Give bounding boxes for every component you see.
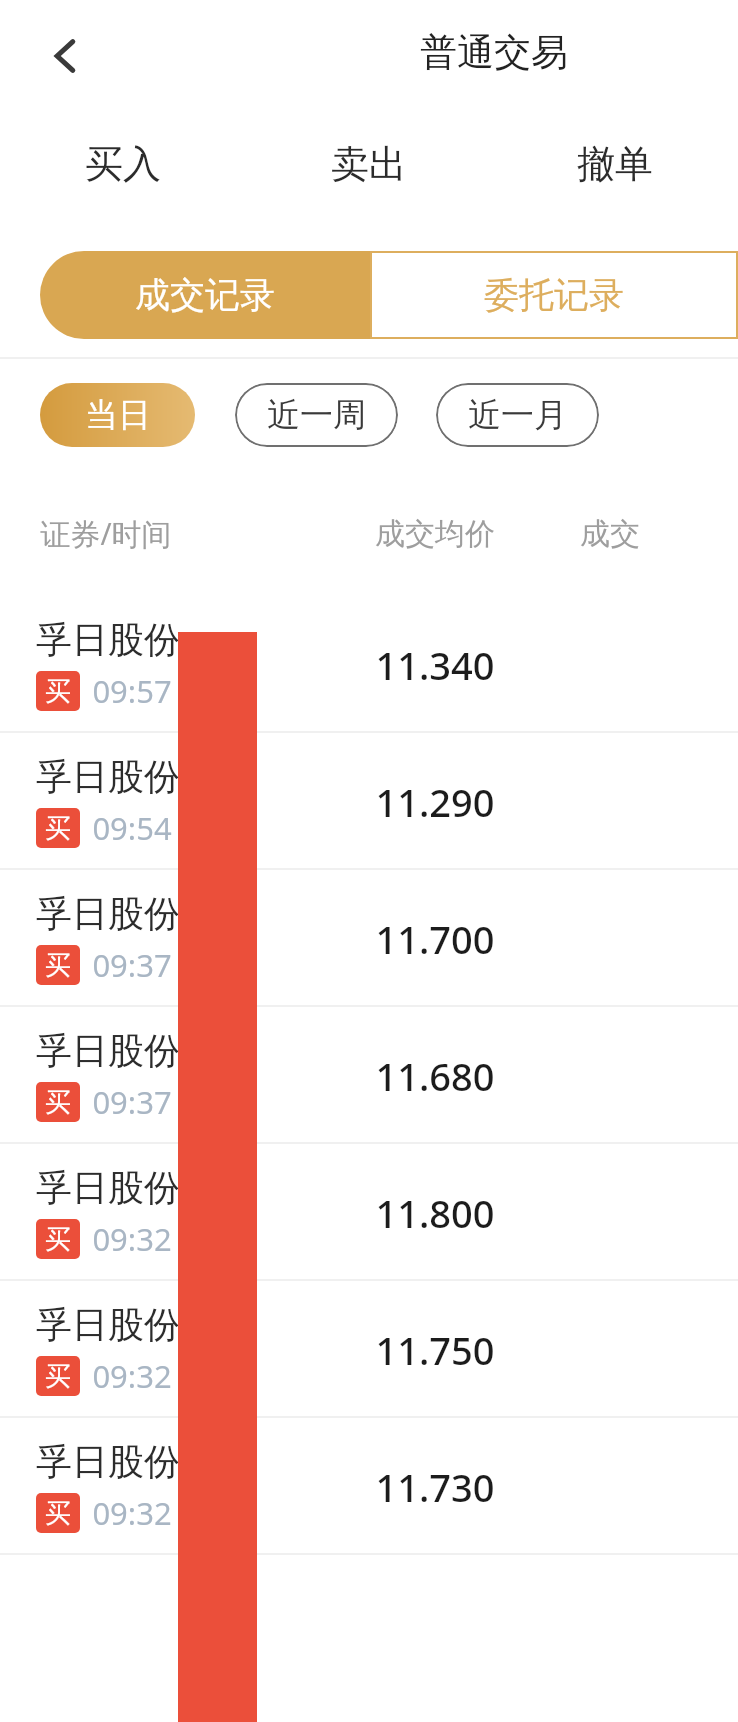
- staticText: 11.290: [375, 776, 495, 828]
- button[interactable]: 孚日股份: [0, 733, 738, 870]
- button[interactable]: 当日: [40, 383, 195, 447]
- button[interactable]: 买入: [0, 112, 246, 216]
- staticText: 11.800: [375, 1187, 495, 1239]
- staticText: 09:54: [92, 807, 172, 849]
- button[interactable]: 孚日股份: [0, 870, 738, 1007]
- staticText: 09:57: [92, 670, 172, 712]
- staticText: 11.730: [375, 1461, 495, 1513]
- staticText: 成交均价: [375, 515, 495, 553]
- staticText: 委托记录: [484, 273, 624, 317]
- staticText: 11.700: [375, 913, 495, 965]
- staticText: 当日: [85, 394, 151, 436]
- button[interactable]: 近一周: [235, 383, 398, 447]
- staticText: 卖出: [331, 140, 407, 188]
- staticText: 买: [45, 675, 71, 708]
- staticText: 09:37: [92, 944, 172, 986]
- button[interactable]: 委托记录: [370, 251, 738, 339]
- staticText: 买: [45, 1086, 71, 1119]
- button[interactable]: 成交记录: [40, 251, 370, 339]
- staticText: 买: [45, 949, 71, 982]
- staticText: 近一月: [468, 394, 567, 436]
- staticText: 撤单: [577, 140, 653, 188]
- button[interactable]: 孚日股份: [0, 1281, 738, 1418]
- staticText: 买: [45, 1497, 71, 1530]
- staticText: 孚日股份: [36, 617, 180, 662]
- staticText: 11.750: [375, 1324, 495, 1376]
- button[interactable]: 孚日股份: [0, 1418, 738, 1555]
- staticText: 买入: [85, 140, 161, 188]
- staticText: 11.680: [375, 1050, 495, 1102]
- button[interactable]: 孚日股份: [0, 1144, 738, 1281]
- staticText: 孚日股份: [36, 1028, 180, 1073]
- staticText: 09:32: [92, 1492, 172, 1534]
- staticText: 孚日股份: [36, 1165, 180, 1210]
- button[interactable]: Back: [36, 26, 96, 86]
- staticText: 09:37: [92, 1081, 172, 1123]
- staticText: 成交记录: [135, 273, 275, 317]
- staticText: 09:32: [92, 1218, 172, 1260]
- staticText: 买: [45, 812, 71, 845]
- staticText: 孚日股份: [36, 1439, 180, 1484]
- button[interactable]: 近一月: [436, 383, 599, 447]
- staticText: 孚日股份: [36, 1302, 180, 1347]
- staticText: 买: [45, 1223, 71, 1256]
- staticText: 09:32: [92, 1355, 172, 1397]
- button[interactable]: 卖出: [246, 112, 492, 216]
- staticText: 普通交易: [420, 29, 568, 76]
- button[interactable]: 孚日股份: [0, 1007, 738, 1144]
- button[interactable]: 孚日股份: [0, 596, 738, 733]
- button[interactable]: 撤单: [492, 112, 738, 216]
- staticText: 11.340: [375, 639, 495, 691]
- staticText: 证券/时间: [40, 513, 172, 554]
- staticText: 买: [45, 1360, 71, 1393]
- staticText: 孚日股份: [36, 754, 180, 799]
- staticText: 近一周: [267, 394, 366, 436]
- staticText: 成交: [580, 515, 640, 553]
- staticText: 孚日股份: [36, 891, 180, 936]
